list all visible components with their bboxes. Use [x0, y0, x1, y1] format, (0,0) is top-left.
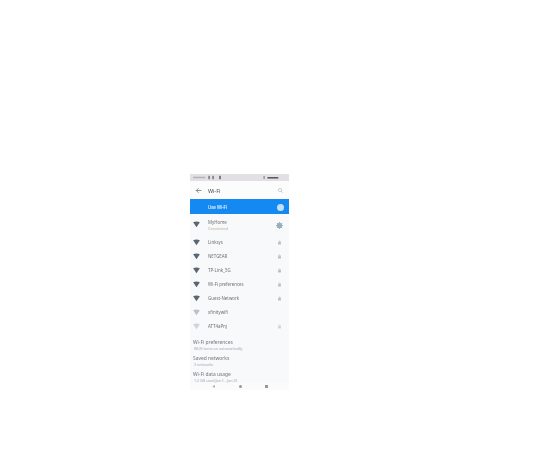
staticText: Guest-Network: [208, 295, 240, 301]
button[interactable]: Home: [236, 383, 244, 390]
staticText: MyHome: [208, 219, 227, 225]
staticText: Linksys: [208, 239, 223, 245]
button[interactable]: Navigate up: [193, 185, 204, 196]
staticText: ATT4aPnj: [208, 323, 227, 329]
staticText: Wi-Fi turns on automatically: [194, 346, 243, 351]
button[interactable]: TP-Link_5G: [190, 263, 289, 277]
staticText: Wi-Fi: [208, 187, 221, 194]
staticText: Wi-Fi preferences: [208, 281, 244, 287]
button[interactable]: Secured network: [274, 265, 284, 275]
button[interactable]: Secured network: [274, 251, 284, 261]
staticText: Wi-Fi preferences: [193, 339, 233, 346]
staticText: 3 networks: [194, 362, 214, 367]
button[interactable]: Secured network: [274, 279, 284, 289]
button[interactable]: ATT4aPnj: [190, 319, 289, 333]
button[interactable]: Linksys: [190, 235, 289, 249]
staticText: Use Wi-Fi: [208, 204, 227, 210]
staticText: Wi-Fi data usage: [193, 371, 231, 378]
button[interactable]: Back: [209, 383, 217, 390]
button[interactable]: Recent apps: [262, 383, 270, 390]
button[interactable]: Network settings: [274, 220, 284, 230]
button[interactable]: Toggle Wi-Fi: [274, 201, 286, 213]
button[interactable]: Use Wi-Fi: [190, 199, 289, 214]
button[interactable]: Secured network: [274, 237, 284, 247]
staticText: Connected: [208, 226, 229, 231]
button[interactable]: xfinitywifi: [190, 305, 289, 319]
staticText: 1.2 GB used Jan 1 - Jan 31: [194, 378, 238, 383]
button[interactable]: Guest-Network: [190, 291, 289, 305]
button[interactable]: Secured network: [274, 293, 284, 303]
staticText: xfinitywifi: [208, 309, 228, 315]
staticText: Saved networks: [193, 355, 230, 362]
button[interactable]: NETGEAR: [190, 249, 289, 263]
button[interactable]: Search: [275, 185, 286, 196]
button[interactable]: Wi-Fi preferences: [190, 277, 289, 291]
button[interactable]: Wi-Fi data usage: [190, 367, 289, 383]
staticText: TP-Link_5G: [208, 267, 231, 273]
staticText: NETGEAR: [208, 253, 228, 259]
button[interactable]: MyHome: [190, 214, 289, 235]
button[interactable]: Wi-Fi preferences: [190, 335, 289, 351]
button[interactable]: Saved networks: [190, 351, 289, 367]
button[interactable]: Secured network: [274, 321, 284, 331]
